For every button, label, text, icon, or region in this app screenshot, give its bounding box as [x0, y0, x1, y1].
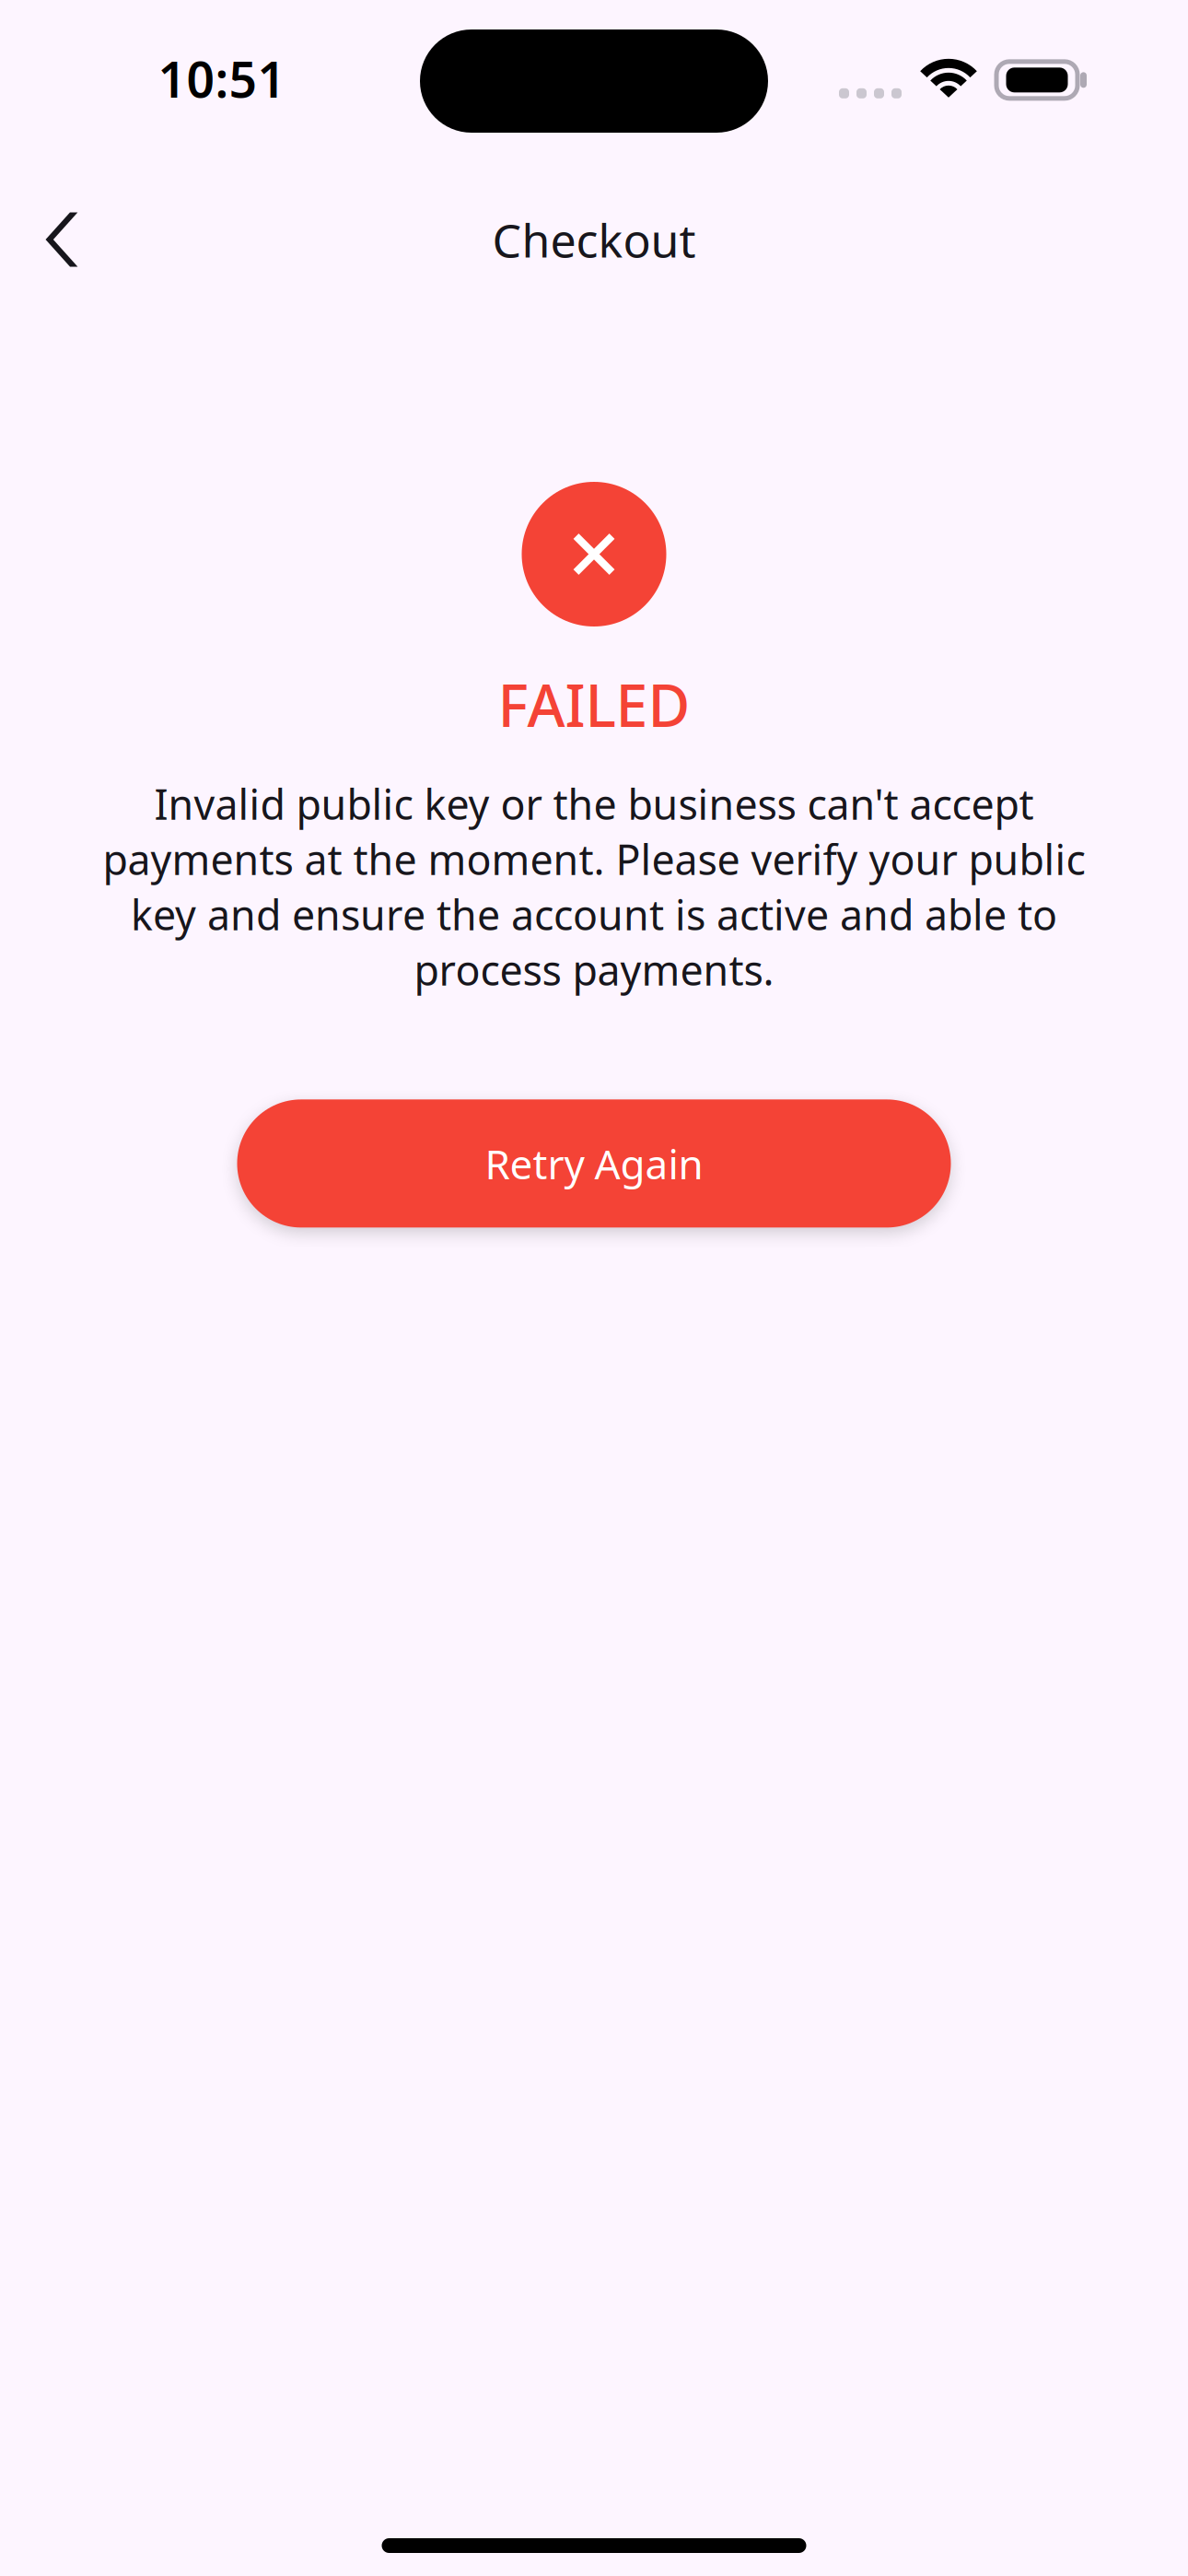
- staticText: Checkout: [492, 208, 696, 271]
- button[interactable]: Retry Again: [237, 1099, 951, 1228]
- staticText: Retry Again: [485, 1136, 703, 1191]
- staticText: FAILED: [498, 665, 690, 744]
- staticText: Invalid public key or the business can't…: [154, 776, 1034, 832]
- staticText: process payments.: [414, 941, 774, 998]
- staticText: payments at the moment. Please verify yo…: [103, 831, 1085, 887]
- staticText: key and ensure the account is active and…: [131, 886, 1057, 942]
- staticText: 10:51: [158, 45, 286, 112]
- button[interactable]: Back: [17, 195, 106, 284]
